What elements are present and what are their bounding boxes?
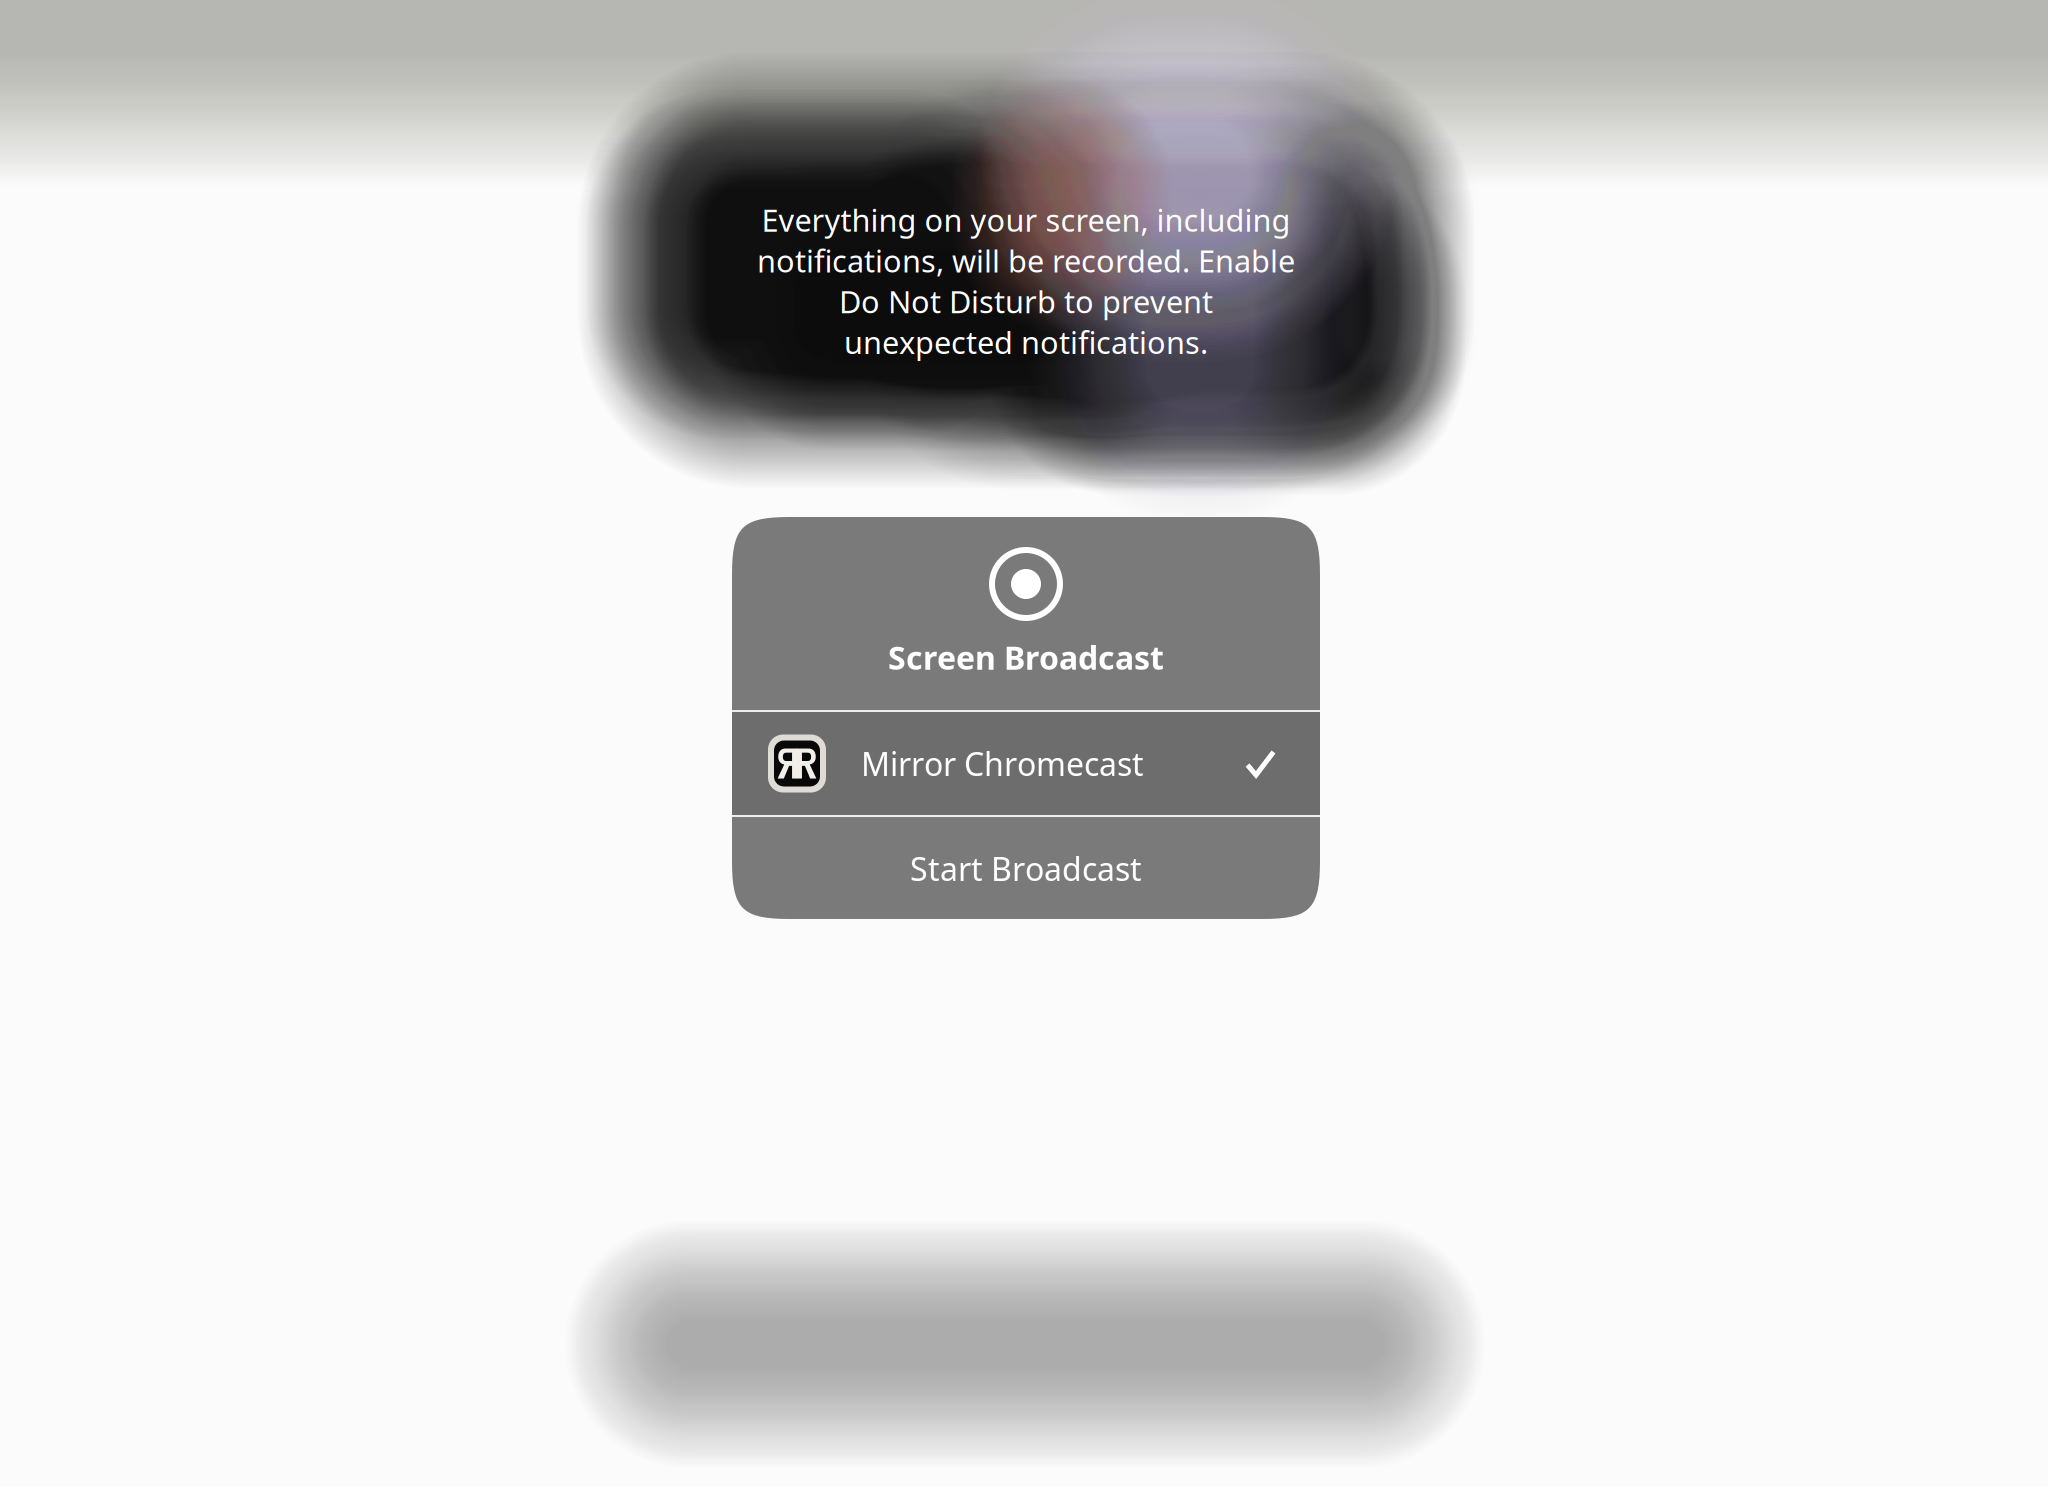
staticText: Mirror Chromecast <box>861 742 1144 785</box>
button[interactable]: Start Broadcast <box>732 817 1320 920</box>
staticText: Screen Broadcast <box>888 636 1164 678</box>
button[interactable]: Mirror Chromecast <box>732 712 1320 815</box>
staticText: Do Not Disturb to prevent <box>839 281 1213 322</box>
staticText: notifications, will be recorded. Enable <box>757 240 1295 281</box>
staticText: Everything on your screen, including <box>761 200 1290 240</box>
staticText: Start Broadcast <box>910 847 1142 890</box>
staticText: unexpected notifications. <box>844 322 1208 362</box>
